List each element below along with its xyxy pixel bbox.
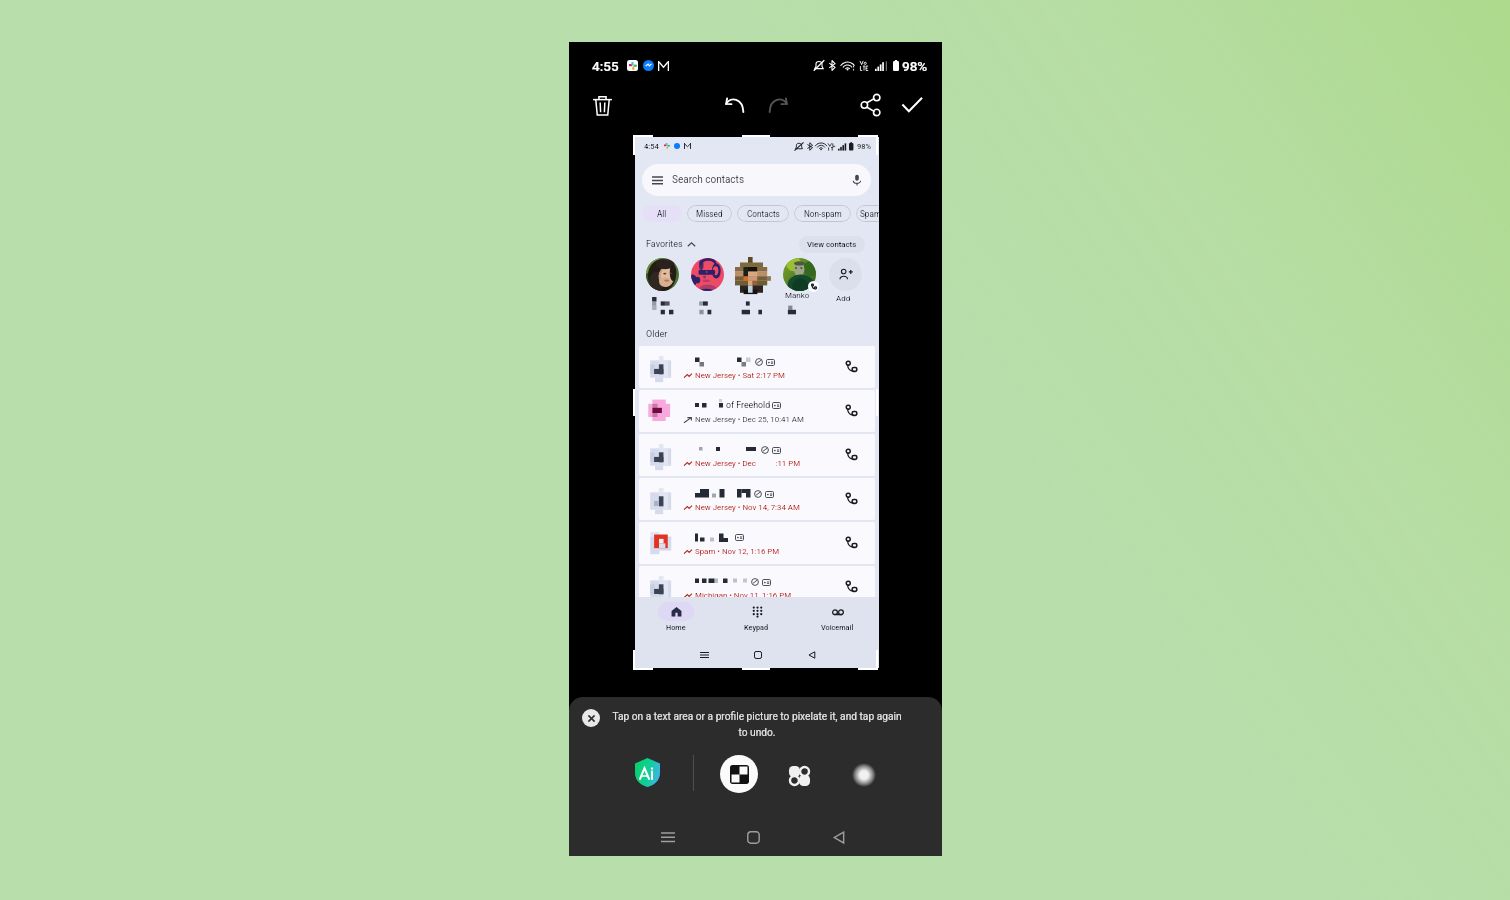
staticText: 4:54 — [644, 142, 659, 151]
button[interactable]: Favorite contact — [732, 254, 776, 298]
staticText: Contacts — [747, 209, 780, 219]
button[interactable]: Favorite contact — [783, 258, 816, 291]
staticText: Search contacts — [672, 174, 745, 186]
button[interactable]: Share — [857, 91, 885, 119]
button[interactable]: Close — [582, 709, 600, 727]
button[interactable]: Call — [842, 578, 860, 596]
staticText: New Jersey • Dec 25, 10:41 AM — [695, 415, 804, 424]
button[interactable]: Spam • Nov 12, 1:16 PM — [639, 522, 875, 564]
button[interactable]: Call — [842, 402, 860, 420]
button[interactable]: Undo — [721, 91, 749, 119]
button[interactable]: Michigan • Nov 11, 1:16 PM — [639, 566, 875, 608]
button[interactable]: Home — [750, 647, 766, 663]
button[interactable]: Redo — [764, 91, 792, 119]
button[interactable]: Call — [842, 534, 860, 552]
button[interactable]: Favorite contact — [646, 258, 679, 291]
button[interactable]: Add contact — [829, 258, 862, 291]
button[interactable]: Favorite contact — [691, 258, 724, 291]
staticText: Michigan • Nov 11, 1:16 PM — [695, 591, 792, 600]
staticText: Spam — [860, 209, 879, 219]
button[interactable]: Blur — [785, 761, 814, 790]
button[interactable]: Keypad — [738, 602, 775, 632]
button[interactable]: Call — [842, 446, 860, 464]
staticText: Non-spam — [804, 209, 842, 219]
staticText: View contacts — [807, 240, 857, 249]
button[interactable]: View contacts — [799, 236, 865, 253]
staticText: Manko — [785, 291, 810, 300]
staticText: Missed — [696, 209, 723, 219]
staticText: Add — [836, 294, 851, 303]
staticText: 98% — [902, 58, 928, 74]
staticText: Keypad — [744, 623, 769, 632]
staticText: New Jersey • Sat 2:17 PM — [695, 371, 785, 380]
button[interactable]: Call — [842, 358, 860, 376]
staticText: 98% — [857, 142, 872, 151]
button[interactable]: of Freehold — [639, 390, 875, 432]
button[interactable]: Missed — [687, 205, 732, 222]
button[interactable]: Search contacts — [642, 164, 871, 196]
button[interactable]: Delete — [588, 91, 616, 119]
button[interactable]: Soft blur — [849, 760, 879, 790]
button[interactable]: Home — [657, 602, 694, 632]
staticText: Favorites — [646, 239, 683, 250]
button[interactable]: Recents — [654, 823, 682, 851]
button[interactable]: New Jersey • Dec :11 PM — [639, 434, 875, 476]
button[interactable]: Back — [804, 647, 820, 663]
button[interactable]: Pixelate — [720, 755, 758, 793]
button[interactable]: Call — [842, 490, 860, 508]
button[interactable]: New Jersey • Sat 2:17 PM — [639, 346, 875, 388]
staticText: Home — [666, 623, 686, 632]
button[interactable]: Back — [825, 823, 853, 851]
button[interactable]: Voicemail — [819, 602, 856, 632]
button[interactable]: Spam — [856, 205, 879, 222]
staticText: New Jersey • Dec :11 PM — [695, 459, 801, 468]
button[interactable]: Done — [898, 91, 926, 119]
button[interactable]: AI eraser — [633, 758, 662, 787]
staticText: Tap on a text area or a profile picture … — [607, 711, 907, 738]
staticText: Older — [646, 329, 668, 340]
staticText: All — [657, 209, 667, 219]
button[interactable]: Home — [739, 823, 767, 851]
staticText: New Jersey • Nov 14, 7:34 AM — [695, 503, 800, 512]
button[interactable]: Recents — [696, 647, 712, 663]
staticText: Voicemail — [821, 623, 854, 632]
staticText: of Freehold — [726, 400, 771, 410]
staticText: 4:55 — [592, 58, 619, 74]
button[interactable]: New Jersey • Nov 14, 7:34 AM — [639, 478, 875, 520]
button[interactable]: Contacts — [737, 205, 789, 222]
button[interactable]: Non-spam — [794, 205, 851, 222]
button[interactable]: All — [642, 205, 682, 222]
staticText: Spam • Nov 12, 1:16 PM — [695, 547, 780, 556]
